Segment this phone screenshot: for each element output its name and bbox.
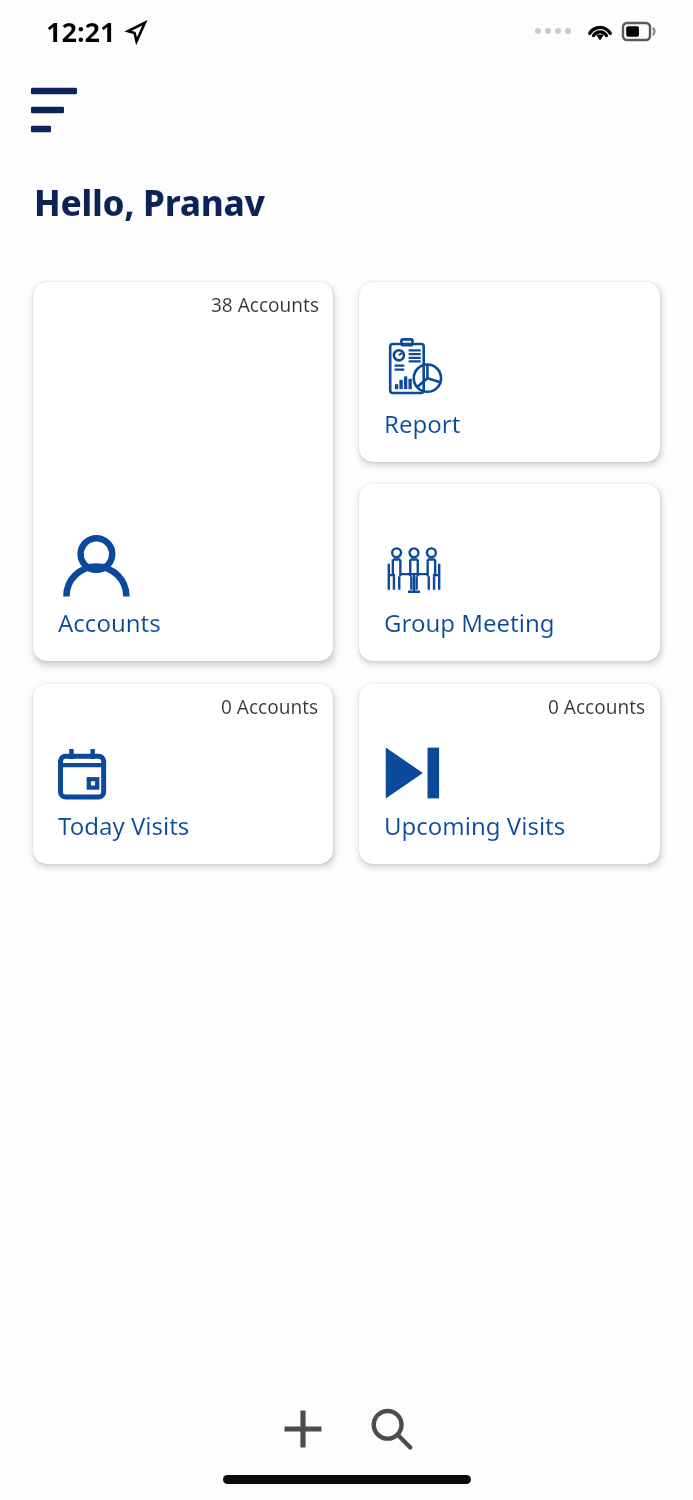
button[interactable]: 38 Accounts: [33, 282, 333, 661]
button[interactable]: Search: [359, 1397, 423, 1461]
button[interactable]: Report: [359, 282, 660, 462]
staticText: Upcoming Visits: [384, 809, 566, 842]
button[interactable]: 0 Accounts: [33, 684, 333, 864]
staticText: Hello, Pranav: [34, 179, 265, 227]
staticText: 0 Accounts: [548, 694, 646, 720]
button[interactable]: Group Meeting: [359, 484, 660, 661]
staticText: Today Visits: [58, 809, 190, 842]
staticText: Report: [384, 407, 461, 440]
staticText: 0 Accounts: [221, 694, 319, 720]
button[interactable]: Menu: [22, 86, 86, 134]
staticText: Accounts: [58, 606, 161, 639]
staticText: 12:21: [46, 13, 116, 50]
staticText: Group Meeting: [384, 606, 555, 639]
button[interactable]: 0 Accounts: [359, 684, 660, 864]
button[interactable]: Add: [271, 1397, 335, 1461]
staticText: 38 Accounts: [211, 292, 319, 318]
